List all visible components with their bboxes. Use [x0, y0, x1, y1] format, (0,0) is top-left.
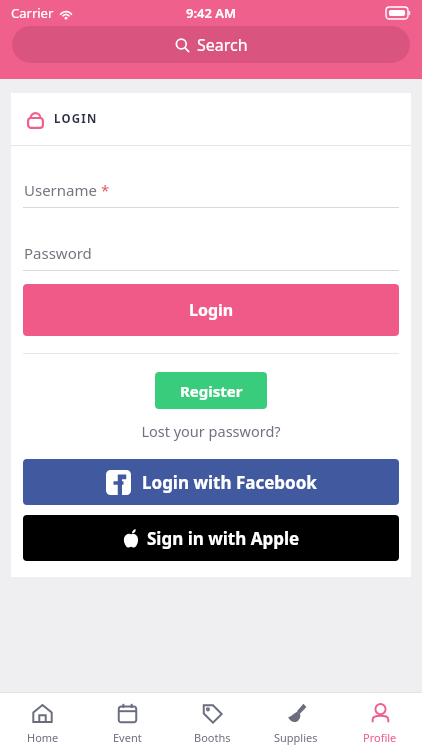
button[interactable]: Lost your password? [23, 421, 399, 441]
staticText: LOGIN [54, 111, 98, 127]
staticText: Carrier [11, 4, 54, 22]
staticText: Login [189, 299, 234, 321]
button[interactable]: Sign in with Apple [23, 515, 399, 561]
staticText: Lost your password? [141, 421, 281, 441]
button[interactable]: Search [12, 26, 410, 63]
button[interactable]: Supplies [254, 698, 338, 745]
button[interactable]: Profile [338, 698, 422, 745]
staticText: Sign in with Apple [147, 527, 300, 550]
staticText: Home [27, 730, 59, 745]
staticText: Booths [194, 730, 231, 745]
staticText: 9:42 AM [186, 4, 237, 22]
staticText: Event [113, 730, 142, 745]
button[interactable]: Login with Facebook [23, 459, 399, 505]
staticText: Password [24, 243, 92, 263]
button[interactable]: Login [23, 284, 399, 336]
staticText: Register [180, 381, 243, 401]
staticText: Profile [363, 730, 397, 745]
button[interactable]: Event [85, 698, 170, 745]
button[interactable]: Booths [170, 698, 254, 745]
staticText: Login with Facebook [142, 471, 317, 494]
staticText: Supplies [274, 730, 318, 745]
button[interactable]: Register [155, 372, 267, 409]
button[interactable]: Home [0, 698, 85, 745]
staticText: Search [197, 34, 248, 56]
staticText: Username * [24, 180, 110, 200]
